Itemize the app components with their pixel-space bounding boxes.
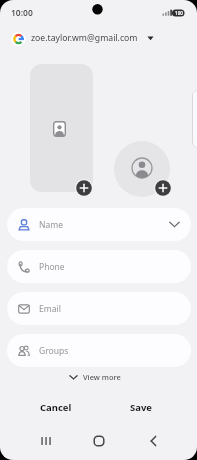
button[interactable]: zoe.taylor.wm@gmail.com: [10, 29, 155, 47]
staticText: zoe.taylor.wm@gmail.com: [31, 32, 138, 44]
button[interactable]: Name: [7, 208, 191, 241]
staticText: Groups: [39, 345, 69, 357]
staticText: Phone: [39, 261, 65, 273]
button[interactable]: Phone: [7, 250, 191, 283]
button[interactable]: View more: [69, 369, 121, 384]
button[interactable]: [75, 179, 93, 197]
button[interactable]: [36, 431, 56, 451]
staticText: Cancel: [40, 401, 72, 414]
staticText: Save: [130, 401, 153, 414]
button[interactable]: [143, 431, 163, 451]
staticText: 10:00: [11, 7, 33, 19]
staticText: Email: [39, 303, 61, 315]
button[interactable]: Cancel: [30, 395, 82, 419]
button[interactable]: [89, 431, 109, 451]
button[interactable]: [114, 141, 170, 197]
staticText: View more: [83, 372, 121, 382]
staticText: Name: [39, 219, 63, 231]
button[interactable]: Groups: [7, 334, 191, 367]
button[interactable]: Email: [7, 292, 191, 325]
button[interactable]: Save: [116, 395, 166, 419]
button[interactable]: [30, 64, 93, 192]
button[interactable]: [154, 179, 172, 197]
staticText: 100: [175, 10, 183, 16]
